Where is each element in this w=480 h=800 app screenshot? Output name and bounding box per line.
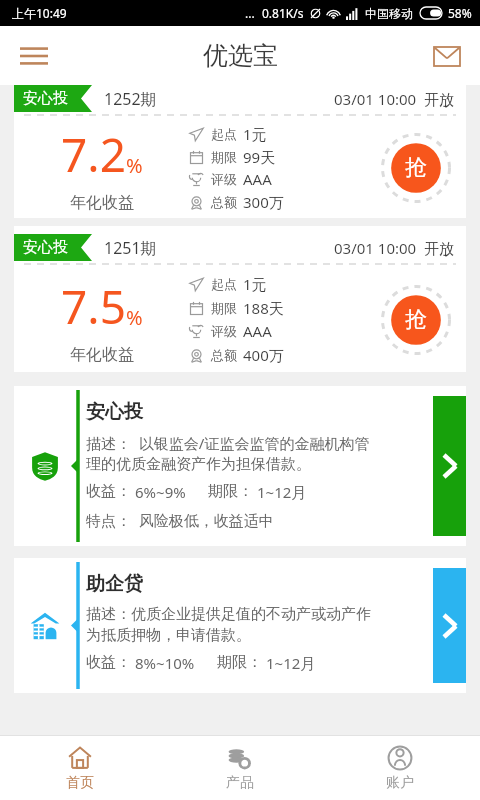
staticText: 7.2 (61, 123, 126, 186)
button[interactable]: 账户 (320, 736, 480, 800)
staticText: 年化收益 (70, 193, 134, 213)
button[interactable]: 抢购 (381, 133, 451, 203)
staticText: 1元 (243, 124, 267, 144)
staticText: 优选宝 (203, 40, 278, 71)
staticText: 理的优质金融资产作为担保借款。 (86, 455, 311, 474)
staticText: 抢 (405, 306, 427, 334)
staticText: 首页 (66, 774, 94, 792)
staticText: 起点 (211, 276, 237, 292)
staticText: 产品 (226, 774, 254, 792)
staticText: 上午10:49 (12, 5, 67, 21)
staticText: 58% (448, 5, 472, 21)
staticText: 期限： (208, 482, 253, 501)
button[interactable]: 抢购 (381, 285, 451, 355)
staticText: 1~12月 (257, 482, 307, 502)
staticText: 03/01 10:00 开放 (334, 89, 454, 109)
staticText: 8%~10% (135, 653, 195, 673)
button[interactable]: 助企贷 (14, 558, 466, 693)
staticText: AAA (243, 169, 272, 189)
button[interactable]: More (433, 396, 466, 536)
staticText: 收益： (86, 482, 131, 501)
staticText: 1251期 (104, 237, 157, 259)
staticText: 总额 (211, 347, 237, 363)
staticText: % (126, 304, 143, 331)
staticText: 期限 (211, 149, 237, 165)
staticText: 起点 (211, 126, 237, 142)
staticText: 为抵质押物，申请借款。 (86, 626, 251, 645)
staticText: 评级 (211, 323, 237, 339)
staticText: 期限： (217, 653, 262, 672)
button[interactable]: 安心投 (14, 85, 466, 218)
staticText: 300万 (243, 192, 284, 212)
button[interactable]: 首页 (0, 736, 160, 800)
staticText: 1元 (243, 274, 267, 294)
staticText: 安心投 (23, 89, 68, 108)
button[interactable]: Menu (10, 32, 58, 80)
staticText: 安心投 (23, 238, 68, 257)
staticText: 188天 (243, 298, 284, 318)
staticText: 中国移动 (365, 6, 413, 21)
staticText: 助企贷 (86, 572, 143, 596)
staticText: 7.5 (61, 275, 126, 338)
staticText: 收益： (86, 653, 131, 672)
staticText: 安心投 (86, 400, 143, 424)
staticText: 描述：优质企业提供足值的不动产或动产作 (86, 605, 371, 624)
staticText: 年化收益 (70, 345, 134, 365)
button[interactable]: More (433, 568, 466, 683)
staticText: 总额 (211, 194, 237, 210)
staticText: 6%~9% (135, 482, 186, 502)
staticText: 抢 (405, 154, 427, 182)
staticText: 描述： 以银监会/证监会监管的金融机构管 (86, 433, 370, 453)
button[interactable]: 安心投 (14, 386, 466, 546)
staticText: 400万 (243, 345, 284, 365)
button[interactable]: 安心投 (14, 226, 466, 372)
staticText: 1252期 (104, 88, 157, 110)
staticText: AAA (243, 321, 272, 341)
button[interactable]: 产品 (160, 736, 320, 800)
staticText: 99天 (243, 147, 276, 167)
staticText: 1~12月 (266, 653, 316, 673)
staticText: % (126, 152, 143, 179)
staticText: 0.81K/s (262, 5, 304, 21)
button[interactable]: Messages (424, 33, 470, 79)
staticText: ... (245, 5, 255, 21)
staticText: 特点： 风险极低，收益适中 (86, 510, 274, 530)
staticText: 评级 (211, 171, 237, 187)
staticText: 账户 (386, 774, 414, 792)
staticText: 03/01 10:00 开放 (334, 238, 454, 258)
staticText: 期限 (211, 300, 237, 316)
